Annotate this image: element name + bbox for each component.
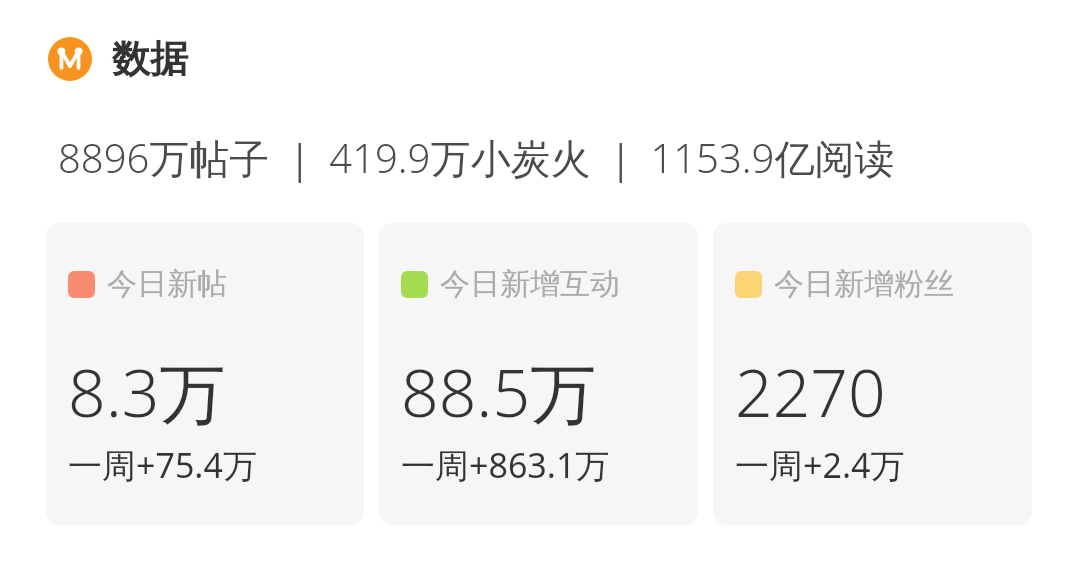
staticText: 8.3万 — [68, 346, 226, 436]
staticText: 今日新增粉丝 — [774, 265, 954, 303]
staticText: 数据 — [112, 35, 188, 83]
staticText: 今日新帖 — [107, 265, 227, 303]
staticText: 一周+2.4万 — [735, 442, 905, 488]
staticText: 一周+863.1万 — [401, 442, 610, 488]
staticText: 今日新增互动 — [440, 265, 620, 303]
staticText: 88.5万 — [401, 346, 597, 436]
button[interactable]: 今日新增粉丝 — [713, 223, 1032, 525]
staticText: 8896万帖子 ｜ 419.9万小炭火 ｜ 1153.9亿阅读 — [58, 130, 895, 185]
staticText: 一周+75.4万 — [68, 442, 257, 488]
button[interactable]: 今日新增互动 — [379, 223, 698, 525]
staticText: 2270 — [735, 346, 886, 436]
other: 数据图标 — [48, 37, 92, 81]
button[interactable]: 今日新帖 — [46, 223, 364, 525]
